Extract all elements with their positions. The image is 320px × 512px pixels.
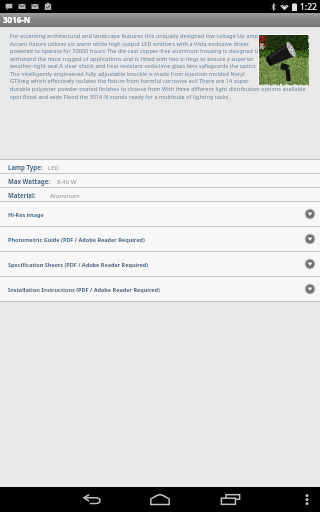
button[interactable]: Recent apps [216, 487, 244, 512]
staticText: Accent fixture utilizes six warm white h… [10, 40, 250, 47]
staticText: GTXreg which effectively isolates the fi… [10, 77, 249, 84]
button[interactable]: More options [297, 487, 317, 512]
staticText: Hi-Res image [8, 211, 304, 218]
staticText: durable polyester powder-coated finishes… [10, 85, 306, 92]
staticText: Installation Instructions (PDF / Adobe R… [8, 286, 304, 293]
button[interactable]: Home [146, 487, 174, 512]
button[interactable]: Installation Instructions (PDF / Adobe R… [0, 277, 320, 302]
staticText: Photometric Guide (PDF / Adobe Reader Re… [8, 236, 304, 243]
staticText: LED [48, 163, 60, 171]
button[interactable]: Back [78, 487, 106, 512]
staticText: For accenting architectural and landscap… [10, 32, 258, 39]
button[interactable]: Photometric Guide (PDF / Adobe Reader Re… [0, 227, 320, 252]
staticText: Aluminum [50, 191, 80, 199]
staticText: 8.40 W [57, 177, 77, 185]
staticText: The intelligently engineered fully adjus… [10, 70, 245, 77]
button[interactable]: Hi-Res image [0, 202, 320, 227]
staticText: Specification Sheets (PDF / Adobe Reader… [8, 261, 304, 268]
staticText: Material: [8, 191, 36, 199]
staticText: 3016-N [3, 14, 31, 25]
staticText: powered to operate for 50000 hours The d… [10, 47, 260, 54]
staticText: weather-tight seal A clear shock and hea… [10, 62, 256, 69]
staticText: 1:22 [300, 1, 317, 13]
staticText: spot flood and wide Flood the 3016-N sta… [10, 93, 232, 100]
staticText: Max Wattage: [8, 177, 51, 185]
button[interactable]: Specification Sheets (PDF / Adobe Reader… [0, 252, 320, 277]
staticText: withstand the most rugged of application… [10, 55, 254, 62]
staticText: Lamp Type: [8, 163, 43, 171]
